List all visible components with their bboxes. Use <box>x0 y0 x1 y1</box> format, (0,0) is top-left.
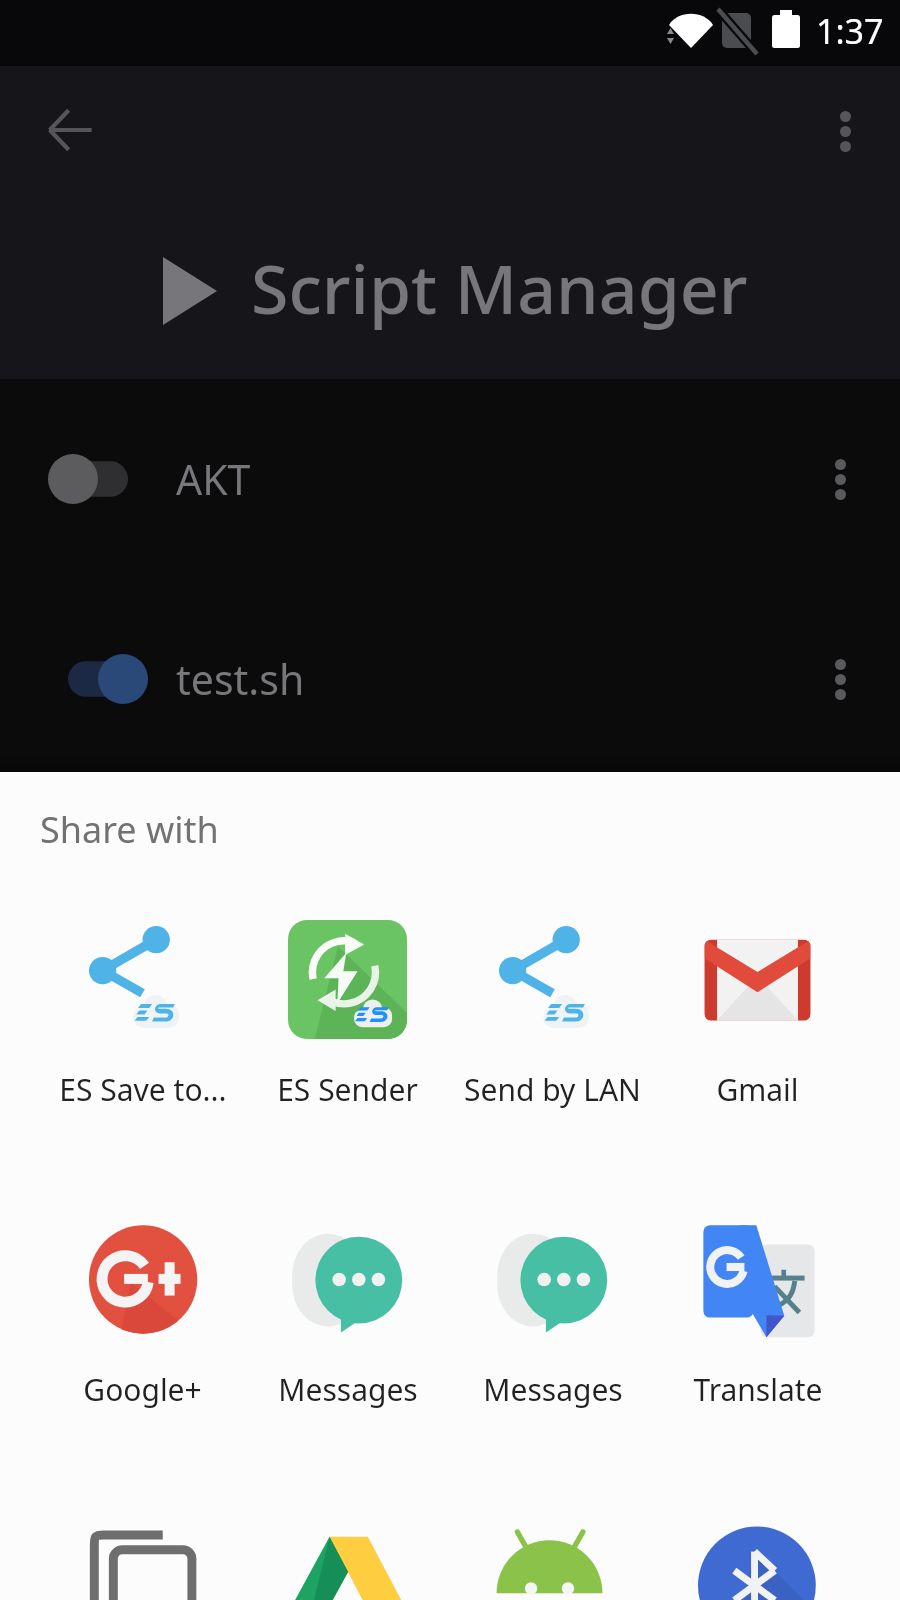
button[interactable]: Copy to clipboard <box>40 1526 245 1600</box>
button[interactable]: Back <box>28 88 112 172</box>
button[interactable]: Android Beam <box>450 1526 655 1600</box>
button[interactable]: Script options <box>798 437 882 521</box>
button[interactable]: Script options <box>798 637 882 721</box>
staticText: Messages <box>278 1369 418 1410</box>
button[interactable]: Google+ <box>40 1220 245 1410</box>
staticText: AKT <box>176 451 251 507</box>
staticText: Google+ <box>83 1369 202 1410</box>
button[interactable]: Messages <box>450 1220 655 1410</box>
staticText: Send by LAN <box>464 1069 641 1110</box>
staticText: Script Manager <box>251 241 748 334</box>
staticText: 1:37 <box>816 8 884 54</box>
staticText: Gmail <box>716 1069 799 1110</box>
staticText: Messages <box>483 1369 623 1410</box>
staticText: Share with <box>40 805 219 854</box>
staticText: ES Sender <box>277 1069 418 1110</box>
button[interactable]: ES Save to... <box>40 920 245 1110</box>
button[interactable]: More options <box>803 89 887 173</box>
staticText: ES Save to... <box>59 1069 227 1110</box>
button[interactable]: Bluetooth <box>655 1526 860 1600</box>
staticText: Translate <box>693 1369 823 1410</box>
button[interactable]: Gmail <box>655 920 860 1110</box>
button[interactable]: Messages <box>245 1220 450 1410</box>
button[interactable]: ES Sender <box>245 920 450 1110</box>
staticText: test.sh <box>176 651 305 707</box>
button[interactable]: Send by LAN <box>450 920 655 1110</box>
button[interactable]: Drive <box>245 1526 450 1600</box>
button[interactable]: AKT <box>0 379 900 579</box>
button[interactable]: Translate <box>655 1220 860 1410</box>
button[interactable]: test.sh <box>0 579 900 779</box>
